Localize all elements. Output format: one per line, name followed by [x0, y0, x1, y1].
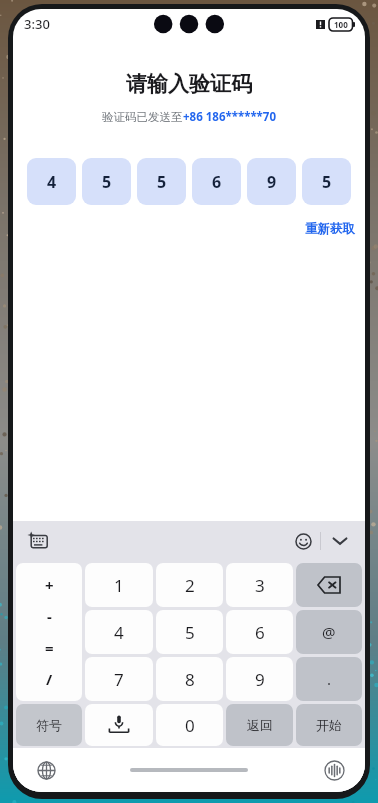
staticText: 6: [212, 171, 222, 193]
staticText: 符号: [36, 717, 62, 733]
button[interactable]: Voice: [319, 755, 349, 785]
staticText: 开始: [316, 717, 342, 733]
staticText: 返回: [247, 717, 273, 733]
button[interactable]: 6: [192, 158, 241, 205]
staticText: 6: [255, 621, 265, 644]
button[interactable]: 4: [85, 610, 153, 654]
button[interactable]: Delete: [296, 563, 362, 607]
staticText: 重新获取: [305, 221, 355, 237]
staticText: 验证码已发送至: [102, 110, 183, 124]
staticText: 5: [322, 171, 332, 193]
staticText: /: [46, 669, 53, 689]
staticText: 8: [185, 668, 195, 691]
button[interactable]: 2: [156, 563, 223, 607]
button[interactable]: 7: [85, 657, 153, 701]
staticText: 2: [185, 574, 195, 597]
button[interactable]: 重新获取: [303, 218, 357, 240]
staticText: @: [322, 622, 336, 642]
button[interactable]: AI keyboard: [25, 528, 51, 554]
staticText: 4: [47, 171, 57, 193]
staticText: 100: [334, 19, 348, 30]
button[interactable]: Emoji: [286, 524, 320, 558]
button[interactable]: 返回: [226, 704, 293, 746]
button[interactable]: Hide keyboard: [321, 522, 359, 560]
button[interactable]: 9: [226, 657, 293, 701]
button[interactable]: +: [16, 563, 82, 701]
staticText: =: [45, 638, 54, 658]
staticText: 请输入验证码: [13, 71, 365, 97]
button[interactable]: 4: [27, 158, 76, 205]
button[interactable]: 5: [137, 158, 186, 205]
button[interactable]: 6: [226, 610, 293, 654]
staticText: 5: [157, 171, 167, 193]
button[interactable]: 1: [85, 563, 153, 607]
staticText: .: [327, 669, 332, 689]
button[interactable]: Change language: [31, 755, 61, 785]
button[interactable]: .: [296, 657, 362, 701]
staticText: 1: [114, 574, 124, 597]
staticText: +86 186******70: [183, 109, 277, 125]
staticText: 3:30: [24, 15, 50, 33]
staticText: 9: [255, 668, 265, 691]
button[interactable]: 符号: [16, 704, 82, 746]
staticText: 7: [114, 668, 124, 691]
button[interactable]: 5: [302, 158, 351, 205]
staticText: -: [47, 606, 52, 626]
staticText: 5: [185, 621, 195, 644]
button[interactable]: 0: [156, 704, 223, 746]
staticText: 4: [114, 621, 124, 644]
button[interactable]: 开始: [296, 704, 362, 746]
staticText: 0: [185, 714, 195, 737]
button[interactable]: 8: [156, 657, 223, 701]
button[interactable]: Voice input: [85, 704, 153, 746]
staticText: 5: [102, 171, 112, 193]
button[interactable]: @: [296, 610, 362, 654]
staticText: 3: [255, 574, 265, 597]
button[interactable]: 5: [82, 158, 131, 205]
button[interactable]: 9: [247, 158, 296, 205]
staticText: 9: [267, 171, 277, 193]
button[interactable]: 5: [156, 610, 223, 654]
button[interactable]: 3: [226, 563, 293, 607]
staticText: +: [45, 575, 54, 595]
